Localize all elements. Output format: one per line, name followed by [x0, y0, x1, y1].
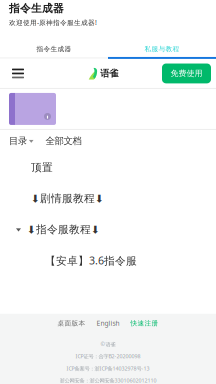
staticText: 免费使用	[170, 68, 202, 78]
button[interactable]: 【安卓】3.6指令服	[0, 245, 216, 276]
staticText: ⬇指令服教程⬇	[27, 223, 100, 236]
staticText: 语雀	[100, 68, 118, 79]
button[interactable]: ⬇剧情服教程⬇	[0, 183, 216, 214]
button[interactable]: 快速注册	[130, 319, 158, 327]
staticText: ICP备案号：浙ICP备14032978号-13	[66, 365, 149, 372]
button[interactable]: 目录	[9, 135, 33, 147]
staticText: 【安卓】3.6指令服	[45, 253, 137, 268]
button[interactable]: 免费使用	[162, 63, 211, 83]
staticText: 目录	[9, 135, 27, 147]
staticText: 指令生成器	[36, 45, 71, 53]
staticText: ICP证号：合字B2-20200098	[75, 353, 140, 360]
button[interactable]: 顶置	[0, 152, 216, 183]
staticText: English	[96, 319, 119, 328]
button[interactable]: 私服与教程	[108, 41, 216, 57]
staticText: 私服与教程	[144, 45, 179, 53]
button[interactable]: English	[96, 319, 119, 328]
button[interactable]: Menu	[0, 60, 33, 87]
button[interactable]: 指令生成器	[0, 41, 108, 57]
staticText: 快速注册	[130, 319, 158, 327]
staticText: 欢迎使用-原神指令服生成器!	[9, 18, 97, 27]
button[interactable]: 桌面版本	[57, 319, 85, 327]
staticText: 全部文档	[45, 135, 81, 147]
staticText: 桌面版本	[57, 319, 85, 327]
button[interactable]: ⬇指令服教程⬇	[0, 214, 216, 245]
staticText: 指令生成器	[9, 2, 64, 15]
staticText: 顶置	[31, 161, 53, 174]
staticText: ⬇剧情服教程⬇	[31, 192, 104, 205]
button[interactable]: 全部文档	[45, 135, 81, 147]
staticText: © 语雀	[100, 341, 115, 348]
staticText: 浙公网安备：浙公网安备33010602012110	[59, 377, 156, 384]
